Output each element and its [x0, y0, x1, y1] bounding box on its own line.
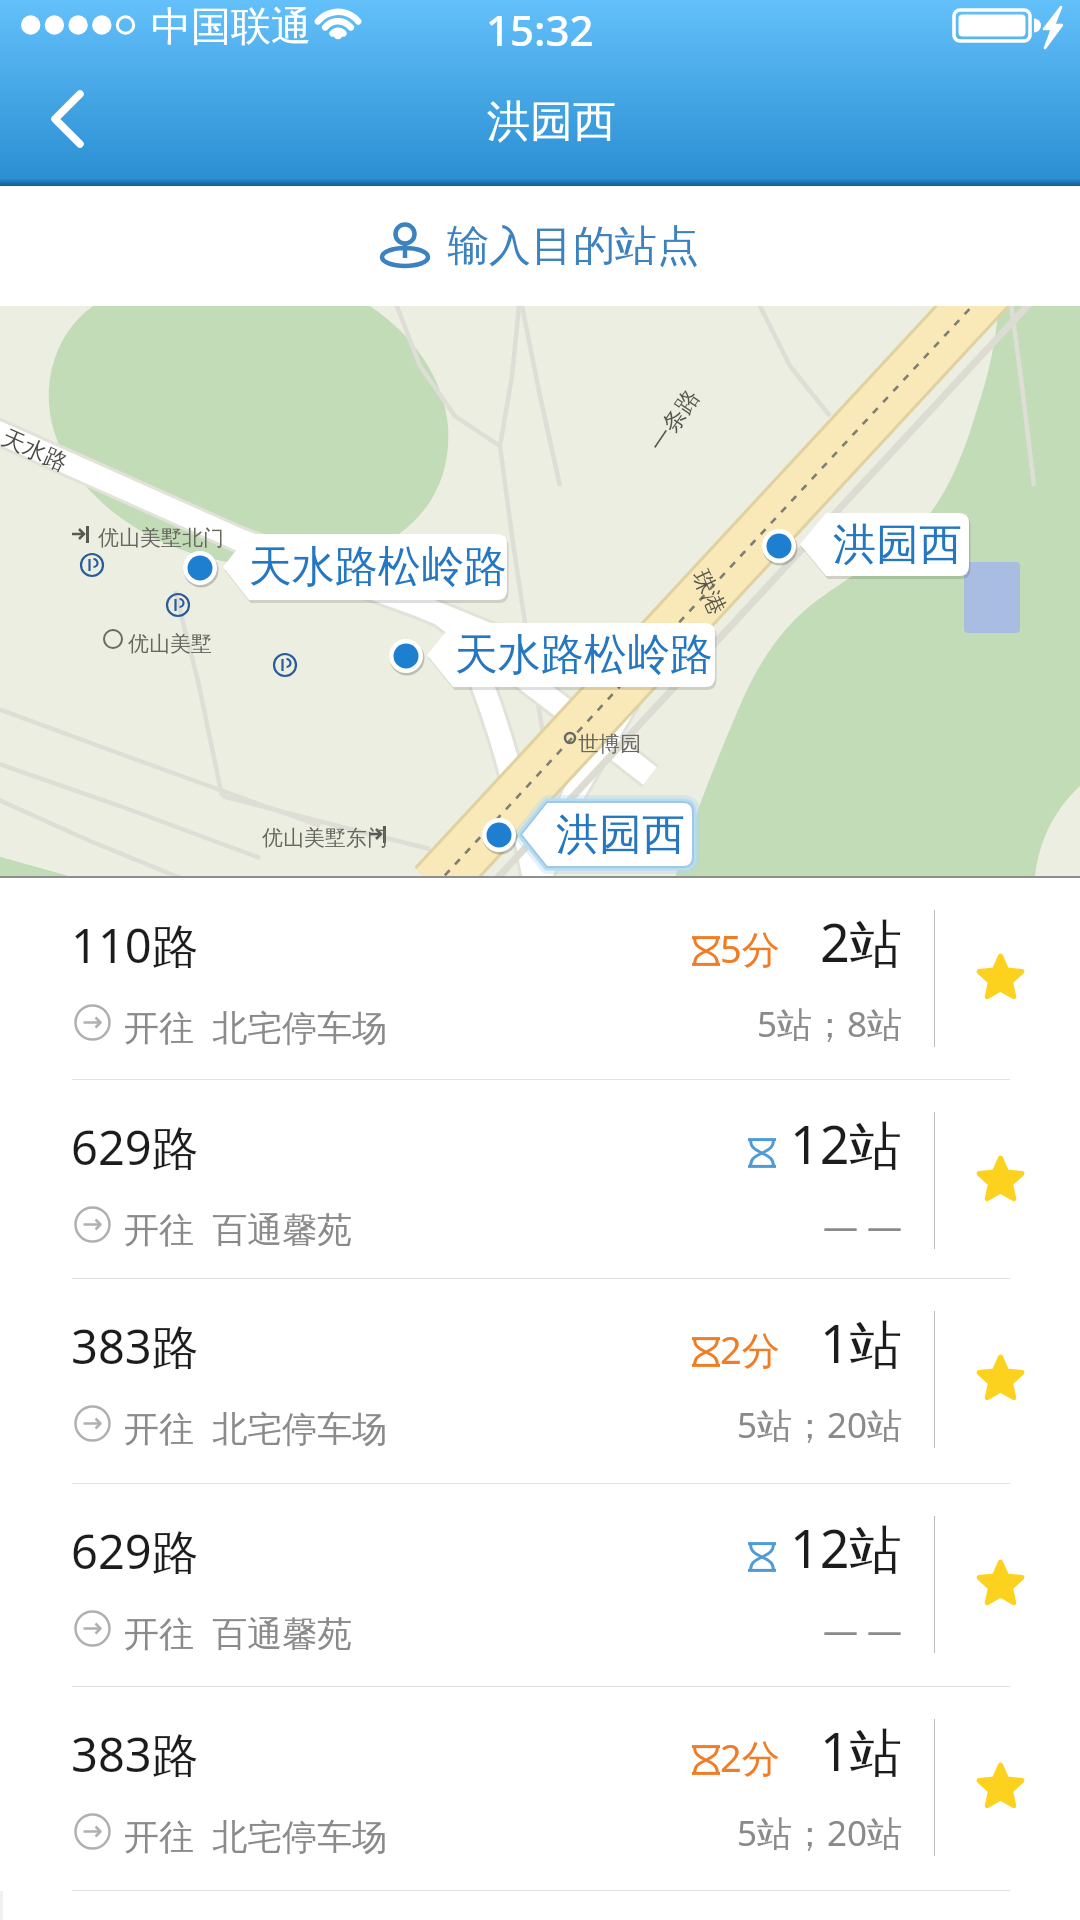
staticText: 天水路松岭路: [455, 628, 713, 682]
staticText: 天水路: [0, 423, 72, 478]
button[interactable]: 天水路松岭路: [0, 306, 1080, 877]
staticText: 输入目的站点: [447, 220, 699, 273]
staticText: 洪园西: [556, 808, 685, 862]
staticText: 12站: [790, 1512, 902, 1583]
staticText: 2分: [720, 1731, 780, 1783]
staticText: 开往 百通馨苑: [124, 1609, 353, 1657]
staticText: 2分: [720, 1323, 780, 1375]
staticText: 5站；20站: [737, 1809, 903, 1857]
staticText: 开往 北宅停车场: [124, 1003, 388, 1051]
staticText: 天水路松岭路: [249, 540, 507, 594]
staticText: 383路: [71, 1314, 199, 1378]
staticText: 629路: [71, 1519, 199, 1583]
staticText: — —: [823, 1606, 903, 1654]
button[interactable]: Favourite: [978, 1561, 1023, 1606]
button[interactable]: 629路: [0, 1080, 1080, 1278]
staticText: 一条路: [643, 384, 706, 457]
staticText: 5站；20站: [737, 1401, 903, 1449]
button[interactable]: 383路: [0, 1687, 1080, 1890]
staticText: 110路: [71, 913, 199, 977]
staticText: 优山美墅北门: [98, 525, 224, 551]
staticText: 中国联通: [151, 1, 311, 51]
staticText: 洪园西: [487, 95, 616, 149]
staticText: 优山美墅东门: [262, 825, 388, 851]
staticText: 世博园: [578, 731, 641, 757]
staticText: 1站: [820, 1307, 902, 1378]
button[interactable]: 110路: [0, 878, 1080, 1079]
staticText: 2站: [820, 906, 902, 977]
button[interactable]: Favourite: [978, 1356, 1023, 1401]
staticText: 珠港: [686, 565, 732, 619]
staticText: 5分: [720, 922, 780, 974]
button[interactable]: 输入目的站点: [0, 186, 1080, 306]
staticText: 洪园西: [833, 518, 962, 572]
staticText: 开往 百通馨苑: [124, 1205, 353, 1253]
button[interactable]: Favourite: [978, 955, 1023, 1000]
staticText: 12站: [790, 1108, 902, 1179]
staticText: 629路: [71, 1115, 199, 1179]
button[interactable]: Back: [10, 60, 120, 176]
button[interactable]: 629路: [0, 1484, 1080, 1686]
staticText: — —: [823, 1202, 903, 1250]
staticText: 开往 北宅停车场: [124, 1404, 388, 1452]
button[interactable]: Favourite: [978, 1157, 1023, 1202]
staticText: 383路: [71, 1722, 199, 1786]
staticText: 15:32: [486, 1, 594, 58]
staticText: 开往 北宅停车场: [124, 1812, 388, 1860]
staticText: 1站: [820, 1715, 902, 1786]
staticText: 优山美墅: [128, 631, 212, 657]
button[interactable]: Favourite: [978, 1764, 1023, 1809]
staticText: 5站；8站: [757, 1000, 903, 1048]
button[interactable]: 383路: [0, 1279, 1080, 1483]
